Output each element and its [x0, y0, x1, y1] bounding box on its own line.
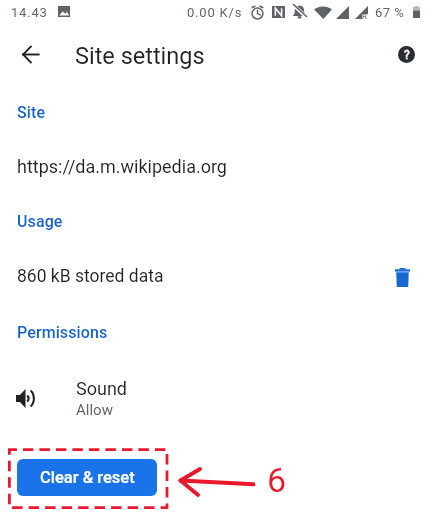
staticText: Site [17, 103, 46, 122]
staticText: 14.43 [11, 5, 48, 20]
staticText: https://da.m.wikipedia.org [17, 156, 227, 177]
staticText: 67 % [375, 5, 405, 20]
staticText: Usage [17, 212, 63, 231]
button[interactable]: 860 kB stored data [0, 258, 380, 294]
button[interactable]: Back [8, 32, 53, 77]
button[interactable]: Sound [0, 372, 432, 424]
staticText: Sound [76, 378, 127, 399]
staticText: Permissions [17, 323, 108, 342]
button[interactable]: Clear & reset [17, 459, 157, 496]
staticText: Site settings [75, 42, 205, 70]
button[interactable]: Help [384, 32, 429, 77]
button[interactable]: Delete stored data [384, 259, 420, 295]
staticText: ? [404, 48, 410, 62]
staticText: 0.00 K/s [187, 5, 243, 20]
staticText: Clear & reset [40, 468, 135, 487]
staticText: 860 kB stored data [17, 266, 164, 287]
staticText: R [362, 12, 367, 21]
staticText: 6 [267, 460, 287, 500]
staticText: Allow [76, 401, 113, 419]
